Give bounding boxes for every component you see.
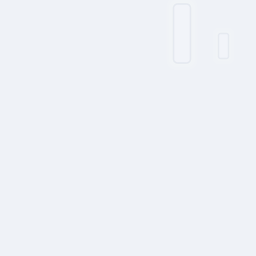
button[interactable]: Apple Watch	[218, 33, 228, 58]
